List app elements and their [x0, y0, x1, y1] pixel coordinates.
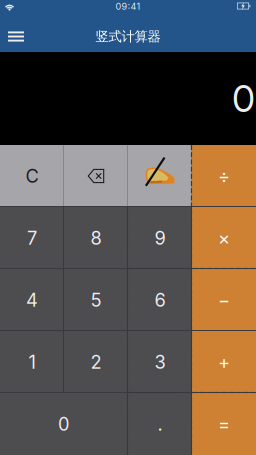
button[interactable]: 7 [0, 207, 64, 269]
button[interactable]: . [128, 393, 192, 455]
button[interactable]: + [192, 331, 256, 393]
staticText: 2 [90, 351, 101, 373]
staticText: − [218, 289, 230, 311]
button[interactable]: ÷ [192, 145, 256, 207]
staticText: × [218, 227, 230, 249]
button[interactable]: − [192, 269, 256, 331]
button[interactable]: C [0, 145, 64, 207]
staticText: 1 [28, 351, 35, 373]
staticText: = [218, 413, 230, 435]
button[interactable]: 9 [128, 207, 192, 269]
staticText: 3 [154, 351, 165, 373]
staticText: 09:41 [115, 1, 140, 12]
button[interactable]: 2 [64, 331, 128, 393]
staticText: ÷ [218, 165, 230, 187]
button[interactable]: Delete [64, 145, 128, 207]
button[interactable]: Handwriting [128, 145, 192, 207]
staticText: 8 [90, 227, 101, 249]
staticText: 竖式计算器 [95, 28, 160, 45]
button[interactable]: = [192, 393, 256, 455]
button[interactable]: 8 [64, 207, 128, 269]
button[interactable]: 3 [128, 331, 192, 393]
staticText: 6 [154, 289, 165, 311]
button[interactable]: Menu [0, 21, 32, 52]
button[interactable]: 4 [0, 269, 64, 331]
button[interactable]: × [192, 207, 256, 269]
button[interactable]: 0 [0, 393, 128, 455]
staticText: 9 [154, 227, 165, 249]
staticText: 0 [58, 413, 70, 435]
staticText: 0 [232, 76, 255, 121]
button[interactable]: 6 [128, 269, 192, 331]
staticText: . [157, 413, 162, 435]
button[interactable]: 1 [0, 331, 64, 393]
staticText: + [218, 351, 230, 373]
staticText: C [25, 165, 38, 187]
staticText: 7 [27, 227, 37, 249]
button[interactable]: 5 [64, 269, 128, 331]
staticText: 5 [90, 289, 101, 311]
staticText: 4 [26, 289, 38, 311]
